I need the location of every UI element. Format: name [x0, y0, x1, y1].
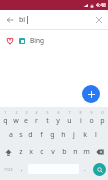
button[interactable]: 9 [86, 109, 96, 126]
button[interactable]: 0 [97, 109, 107, 126]
button[interactable]: 6 [53, 109, 63, 126]
button[interactable]: m [81, 144, 91, 160]
button[interactable]: z [16, 144, 25, 160]
button[interactable]: v [48, 144, 58, 160]
staticText: 4:48 [96, 2, 106, 9]
button[interactable]: k [80, 127, 90, 143]
staticText: i [80, 116, 82, 126]
button[interactable]: Clear [89, 10, 108, 29]
button[interactable]: f [36, 127, 46, 143]
button[interactable]: Add [82, 85, 100, 103]
staticText: 8 [79, 110, 82, 115]
button[interactable]: n [70, 144, 80, 160]
staticText: , [21, 165, 23, 173]
button[interactable]: Search [93, 163, 106, 176]
staticText: q [3, 116, 8, 126]
staticText: 3 [25, 110, 28, 115]
button[interactable]: s [16, 127, 25, 143]
staticText: h [61, 130, 66, 140]
staticText: v [51, 147, 55, 157]
staticText: Bing [30, 36, 44, 45]
button[interactable]: j [69, 127, 79, 143]
button[interactable]: 1 [1, 109, 10, 126]
staticText: n [73, 147, 78, 157]
button[interactable]: 8 [75, 109, 85, 126]
button[interactable]: 3 [21, 109, 30, 126]
button[interactable]: x [26, 144, 36, 160]
staticText: j [73, 130, 75, 140]
staticText: 6 [57, 110, 60, 115]
button[interactable]: d [26, 127, 35, 143]
staticText: k [83, 130, 87, 140]
button[interactable]: 2 [11, 109, 20, 126]
staticText: d [28, 130, 33, 140]
staticText: 0 [101, 110, 104, 115]
staticText: l [95, 130, 97, 140]
staticText: c [40, 147, 44, 157]
button[interactable]: Back [0, 10, 19, 29]
staticText: 9 [90, 110, 93, 115]
button[interactable]: b [59, 144, 69, 160]
staticText: u [67, 116, 72, 126]
staticText: ?123 [4, 167, 13, 172]
staticText: 2 [15, 110, 18, 115]
staticText: b [62, 147, 67, 157]
staticText: z [19, 147, 23, 157]
button[interactable]: a [6, 127, 15, 143]
button[interactable]: 5 [42, 109, 52, 126]
button[interactable]: g [47, 127, 57, 143]
staticText: x [29, 147, 33, 157]
button[interactable]: Backspace [92, 144, 107, 160]
staticText: r [35, 116, 38, 126]
staticText: t [46, 116, 49, 126]
button[interactable]: . [80, 161, 90, 177]
staticText: f [40, 130, 43, 140]
staticText: y [56, 116, 60, 126]
button[interactable]: l [91, 127, 101, 143]
staticText: m [83, 147, 90, 157]
button[interactable]: Shift [1, 144, 15, 160]
staticText: bi [19, 15, 26, 25]
button[interactable]: ?123 [1, 161, 16, 177]
staticText: e [24, 116, 28, 126]
staticText: p [100, 116, 105, 126]
staticText: s [19, 130, 23, 140]
staticText: w [13, 116, 19, 126]
staticText: o [89, 116, 94, 126]
button[interactable]: , [17, 161, 27, 177]
staticText: 1 [4, 110, 7, 115]
button[interactable]: 4 [31, 109, 41, 126]
button[interactable]: 7 [64, 109, 74, 126]
staticText: 5 [46, 110, 49, 115]
staticText: 7 [68, 110, 71, 115]
button[interactable]: h [58, 127, 68, 143]
staticText: g [50, 130, 55, 140]
staticText: . [84, 165, 86, 173]
staticText: a [9, 130, 13, 140]
button[interactable]: Bing [0, 30, 108, 51]
staticText: 4 [35, 110, 38, 115]
button[interactable]: c [37, 144, 47, 160]
